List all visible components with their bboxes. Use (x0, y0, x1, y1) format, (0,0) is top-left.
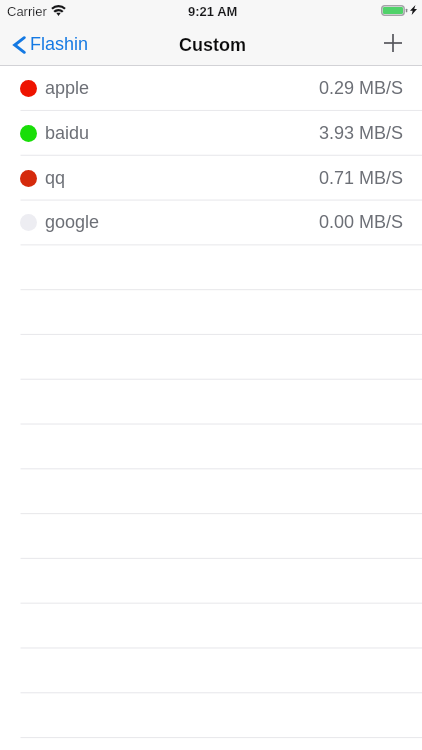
staticText: Flashin (30, 34, 89, 54)
staticText: apple (45, 78, 90, 98)
staticText: 0.00 MB/S (319, 212, 404, 232)
staticText: 0.71 MB/S (319, 168, 404, 188)
staticText: qq (45, 168, 66, 188)
staticText: 3.93 MB/S (319, 123, 404, 143)
button[interactable]: google (0, 200, 422, 245)
button[interactable]: apple (0, 66, 422, 111)
staticText: baidu (45, 123, 90, 143)
button[interactable]: qq (0, 156, 422, 201)
staticText: google (45, 212, 100, 232)
button[interactable]: baidu (0, 111, 422, 156)
staticText: 9:21 AM (188, 4, 238, 19)
staticText: 0.29 MB/S (319, 78, 404, 98)
staticText: Carrier (7, 4, 47, 19)
button[interactable]: Flashin (0, 28, 99, 60)
button[interactable]: Add (370, 26, 422, 62)
staticText: Custom (179, 35, 246, 55)
